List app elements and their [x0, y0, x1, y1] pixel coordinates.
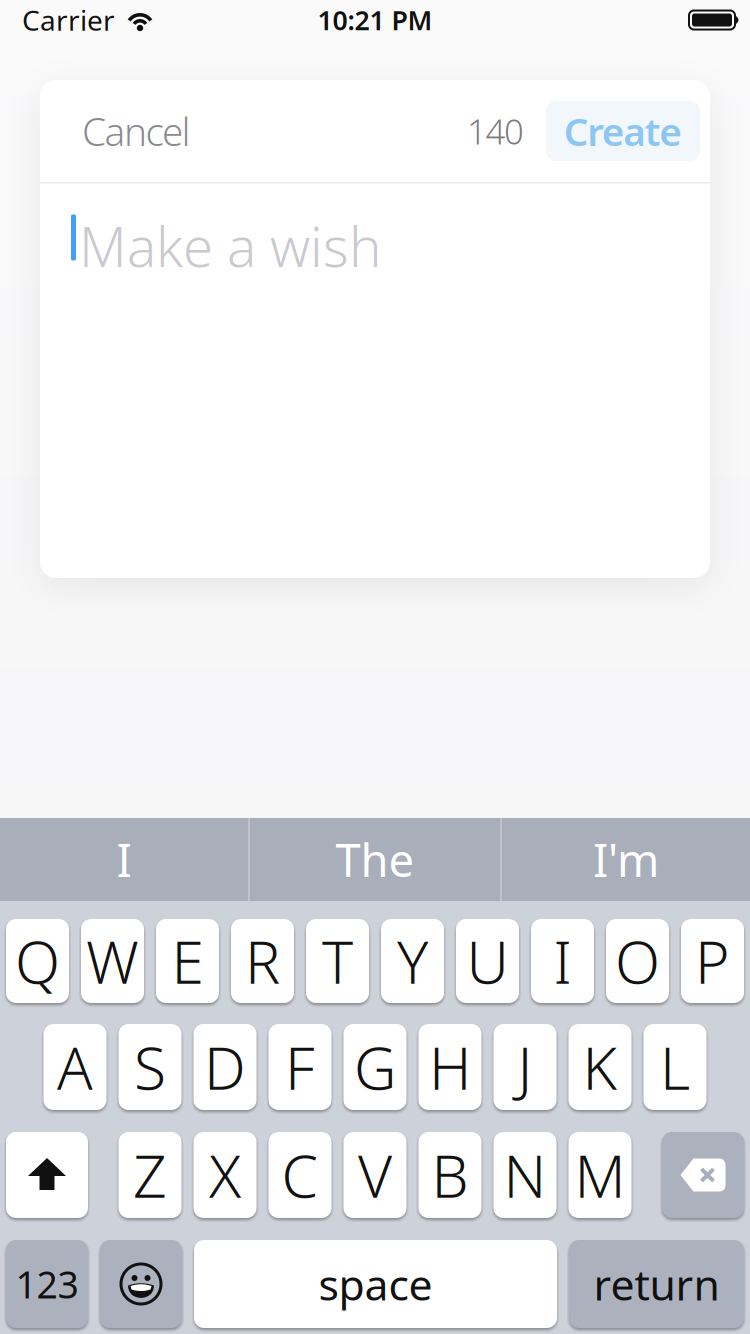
button[interactable]: return	[569, 1240, 744, 1328]
button[interactable]: Q	[6, 919, 69, 1003]
button[interactable]: Wish text	[40, 183, 710, 578]
staticText: B	[431, 1136, 468, 1214]
button[interactable]: S	[118, 1024, 181, 1110]
button[interactable]: B	[418, 1132, 481, 1218]
staticText: Y	[397, 922, 428, 1000]
button[interactable]: R	[231, 919, 294, 1003]
staticText: Q	[15, 922, 60, 1000]
staticText: Create	[564, 105, 682, 157]
button[interactable]: Delete	[662, 1132, 744, 1218]
staticText: X	[209, 1136, 241, 1214]
button[interactable]: C	[268, 1132, 331, 1218]
staticText: N	[503, 1136, 546, 1214]
button[interactable]: I	[0, 818, 248, 901]
button[interactable]: Create	[546, 101, 700, 161]
staticText: U	[466, 922, 508, 1000]
button[interactable]: The	[250, 818, 500, 901]
staticText: L	[660, 1028, 690, 1106]
staticText: G	[354, 1028, 396, 1106]
button[interactable]: M	[568, 1132, 631, 1218]
button[interactable]: K	[568, 1024, 631, 1110]
staticText: K	[582, 1028, 617, 1106]
button[interactable]: X	[193, 1132, 256, 1218]
staticText: D	[204, 1028, 246, 1106]
staticText: W	[86, 922, 139, 1000]
button[interactable]: F	[268, 1024, 331, 1110]
staticText: T	[322, 922, 353, 1000]
staticText: Z	[133, 1136, 167, 1214]
staticText: I	[116, 829, 131, 890]
staticText: V	[358, 1136, 392, 1214]
staticText: Carrier	[22, 1, 115, 39]
staticText: P	[695, 922, 730, 1000]
staticText: R	[245, 922, 280, 1000]
button[interactable]: Y	[381, 919, 444, 1003]
staticText: J	[517, 1028, 532, 1106]
staticText: 140	[467, 108, 524, 154]
button[interactable]: V	[343, 1132, 406, 1218]
staticText: 123	[15, 1259, 78, 1309]
button[interactable]: P	[681, 919, 744, 1003]
staticText: The	[335, 829, 414, 890]
staticText: M	[574, 1136, 625, 1214]
staticText: E	[171, 922, 203, 1000]
staticText: H	[429, 1028, 471, 1106]
button[interactable]: H	[418, 1024, 481, 1110]
staticText: 10:21 PM	[317, 2, 432, 38]
button[interactable]: L	[643, 1024, 706, 1110]
button[interactable]: U	[456, 919, 519, 1003]
button[interactable]: O	[606, 919, 669, 1003]
staticText: space	[318, 1256, 432, 1312]
staticText: Cancel	[82, 105, 190, 157]
button[interactable]: N	[493, 1132, 556, 1218]
button[interactable]: Shift	[6, 1132, 88, 1218]
button[interactable]: E	[156, 919, 219, 1003]
button[interactable]: 123	[6, 1240, 88, 1328]
staticText: S	[134, 1028, 166, 1106]
staticText: I	[553, 922, 571, 1000]
staticText: return	[593, 1256, 719, 1312]
button[interactable]: I'm	[502, 818, 750, 901]
button[interactable]: Emoji	[100, 1240, 182, 1328]
button[interactable]: G	[343, 1024, 406, 1110]
button[interactable]: T	[306, 919, 369, 1003]
staticText: O	[615, 922, 660, 1000]
staticText: I'm	[593, 829, 659, 890]
staticText: C	[281, 1136, 318, 1214]
button[interactable]: Z	[118, 1132, 181, 1218]
button[interactable]: Cancel	[82, 105, 190, 157]
staticText: Make a wish	[79, 209, 382, 282]
button[interactable]: D	[193, 1024, 256, 1110]
staticText: F	[285, 1028, 315, 1106]
staticText: A	[57, 1028, 93, 1106]
button[interactable]: A	[43, 1024, 106, 1110]
button[interactable]: I	[531, 919, 594, 1003]
button[interactable]: space	[194, 1240, 557, 1328]
button[interactable]: J	[493, 1024, 556, 1110]
button[interactable]: W	[81, 919, 144, 1003]
